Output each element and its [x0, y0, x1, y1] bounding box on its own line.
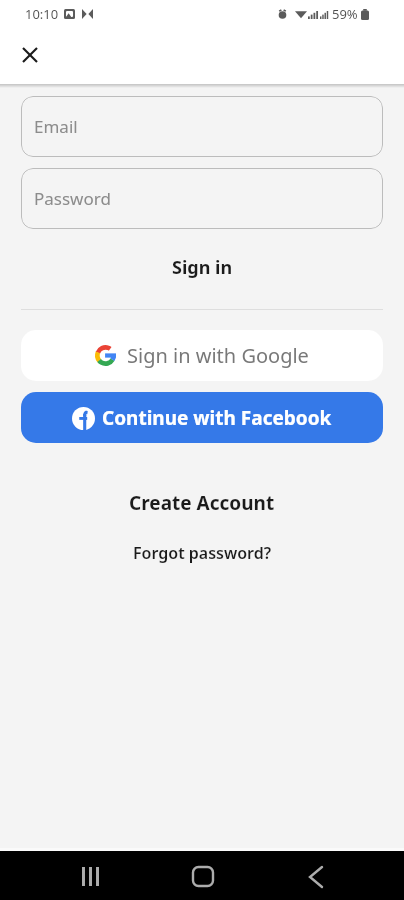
staticText: 59% — [332, 5, 358, 23]
button[interactable]: Recents — [65, 851, 115, 900]
button[interactable]: Sign in with Google — [21, 330, 383, 381]
button[interactable]: Sign in — [0, 247, 404, 287]
button[interactable]: Email — [21, 96, 383, 157]
button[interactable]: Continue with Facebook — [21, 392, 383, 443]
button[interactable]: Back — [291, 851, 341, 900]
staticText: Email — [34, 115, 78, 138]
button[interactable]: Password — [21, 168, 383, 229]
staticText: Continue with Facebook — [102, 405, 332, 431]
button[interactable]: Close — [10, 35, 50, 75]
staticText: Password — [34, 187, 111, 210]
staticText: 10:10 — [25, 5, 59, 23]
staticText: Forgot password? — [133, 542, 272, 564]
staticText: Sign in with Google — [127, 342, 309, 369]
button[interactable]: Home — [178, 851, 228, 900]
staticText: Create Account — [129, 490, 275, 516]
button[interactable]: Forgot password? — [0, 537, 404, 569]
staticText: Sign in — [172, 255, 233, 280]
button[interactable]: Create Account — [0, 483, 404, 523]
